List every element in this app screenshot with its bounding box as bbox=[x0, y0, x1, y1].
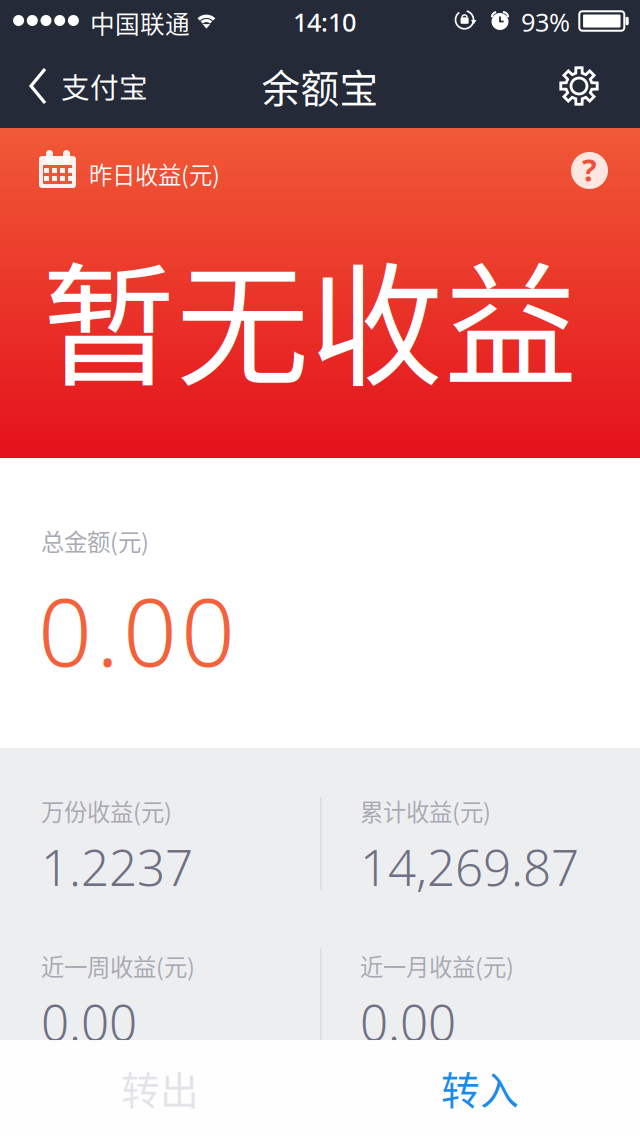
staticText: 暂无收益 bbox=[42, 220, 577, 413]
staticText: 14:10 bbox=[293, 5, 356, 39]
staticText: 累计收益(元) bbox=[360, 794, 491, 828]
staticText: 93% bbox=[521, 5, 570, 39]
staticText: 0.00 bbox=[41, 989, 137, 1054]
staticText: 余额宝 bbox=[261, 58, 378, 114]
staticText: 0.00 bbox=[360, 989, 456, 1054]
staticText: 昨日收益(元) bbox=[89, 157, 220, 191]
staticText: 转出 bbox=[121, 1060, 199, 1116]
staticText: 支付宝 bbox=[61, 65, 148, 107]
staticText: 万份收益(元) bbox=[41, 794, 172, 828]
staticText: 近一月收益(元) bbox=[360, 949, 514, 983]
staticText: 中国联通 bbox=[90, 5, 190, 41]
staticText: 14,269.87 bbox=[360, 834, 579, 899]
button[interactable]: 支付宝 bbox=[0, 44, 172, 128]
button[interactable]: 转入 bbox=[320, 1040, 640, 1136]
staticText: 总金额(元) bbox=[41, 524, 149, 558]
staticText: 0.00 bbox=[38, 567, 235, 693]
button[interactable]: 转出 bbox=[0, 1040, 320, 1136]
button[interactable]: Settings bbox=[559, 66, 599, 106]
staticText: ? bbox=[582, 149, 597, 190]
staticText: 1.2237 bbox=[41, 834, 193, 899]
button[interactable]: Help bbox=[571, 152, 608, 189]
staticText: 转入 bbox=[441, 1060, 519, 1116]
staticText: 近一周收益(元) bbox=[41, 949, 195, 983]
